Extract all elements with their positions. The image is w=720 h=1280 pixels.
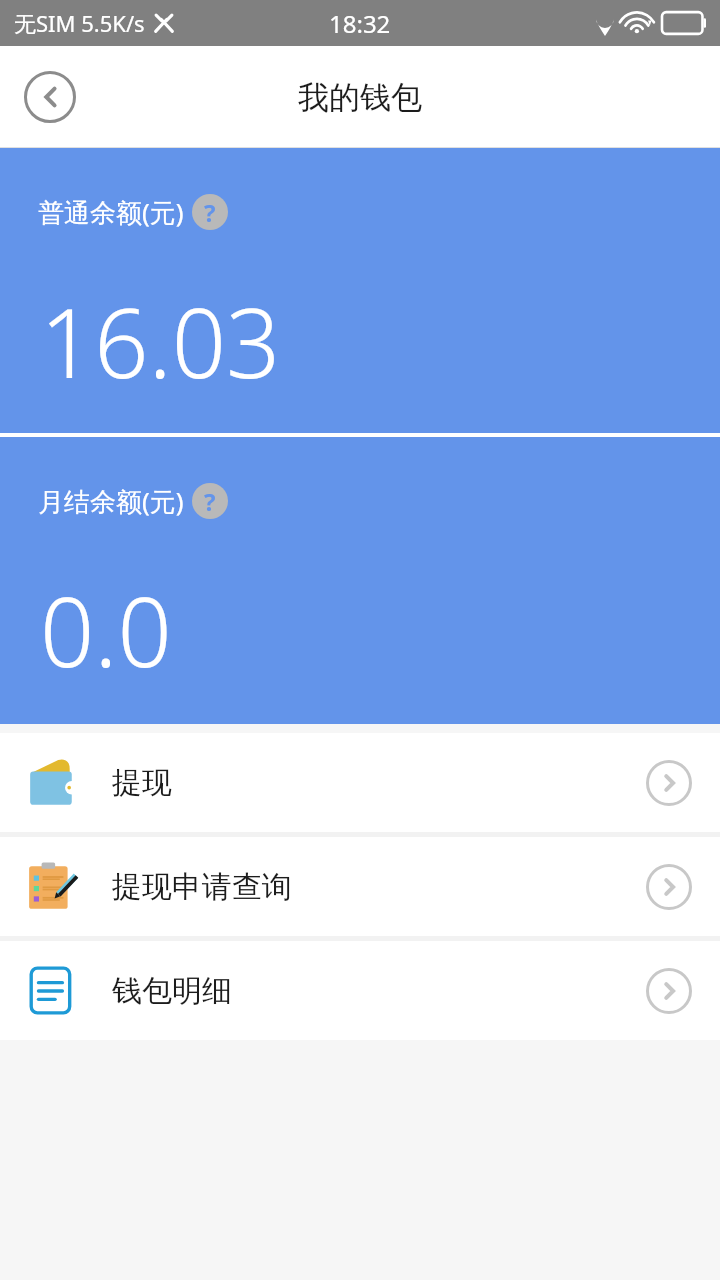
- button[interactable]: 提现申请查询: [0, 837, 720, 936]
- staticText: 提现申请查询: [112, 868, 292, 906]
- staticText: 无SIM 5.5K/s: [14, 8, 145, 38]
- staticText: 16.03: [40, 276, 281, 405]
- staticText: 0.0: [40, 565, 172, 694]
- staticText: ?: [204, 196, 216, 229]
- staticText: 月结余额(元): [38, 483, 184, 519]
- staticText: 普通余额(元): [38, 194, 184, 230]
- staticText: 钱包明细: [112, 972, 232, 1010]
- staticText: ?: [204, 485, 216, 518]
- button[interactable]: Back: [22, 69, 78, 125]
- staticText: 提现: [112, 764, 172, 802]
- staticText: 18:32: [329, 7, 391, 40]
- button[interactable]: 钱包明细: [0, 941, 720, 1040]
- button[interactable]: Help: [192, 194, 228, 230]
- staticText: 我的钱包: [298, 78, 422, 117]
- button[interactable]: 提现: [0, 733, 720, 832]
- button[interactable]: Help: [192, 483, 228, 519]
